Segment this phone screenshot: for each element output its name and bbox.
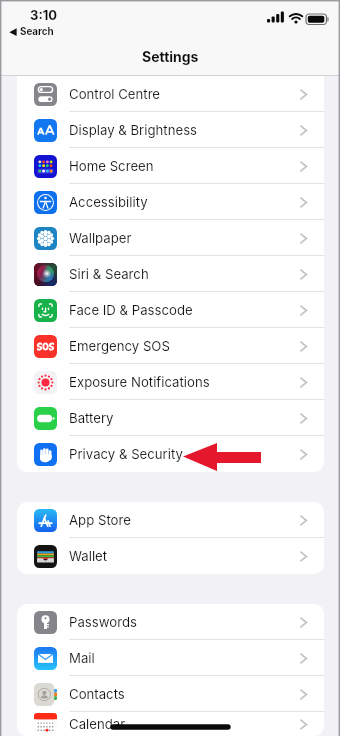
button[interactable]: Wallpaper bbox=[17, 220, 324, 256]
button[interactable]: Search bbox=[9, 26, 54, 38]
staticText: Wallet bbox=[69, 548, 108, 564]
button[interactable]: Control Centre bbox=[17, 76, 324, 112]
staticText: Control Centre bbox=[69, 86, 161, 102]
button[interactable]: Face ID & Passcode bbox=[17, 292, 324, 328]
button[interactable]: Exposure Notifications bbox=[17, 364, 324, 400]
button[interactable]: Wallet bbox=[17, 538, 324, 574]
staticText: Emergency SOS bbox=[69, 338, 170, 354]
staticText: Display & Brightness bbox=[69, 122, 198, 138]
button[interactable]: Battery bbox=[17, 400, 324, 436]
staticText: Battery bbox=[69, 410, 114, 426]
staticText: Passwords bbox=[69, 614, 137, 630]
staticText: Calendar bbox=[69, 716, 126, 732]
button[interactable]: Home Screen bbox=[17, 148, 324, 184]
staticText: 3:10 bbox=[30, 7, 58, 23]
button[interactable]: Emergency SOS bbox=[17, 328, 324, 364]
button[interactable]: Accessibility bbox=[17, 184, 324, 220]
button[interactable]: Mail bbox=[17, 640, 324, 676]
staticText: Mail bbox=[69, 650, 95, 666]
staticText: Settings bbox=[142, 48, 199, 65]
staticText: App Store bbox=[69, 512, 131, 528]
button[interactable]: Display & Brightness bbox=[17, 112, 324, 148]
button[interactable]: Siri & Search bbox=[17, 256, 324, 292]
staticText: Home Screen bbox=[69, 158, 154, 174]
staticText: Accessibility bbox=[69, 194, 148, 210]
staticText: Contacts bbox=[69, 686, 125, 702]
button[interactable]: Calendar bbox=[17, 712, 324, 736]
staticText: Privacy & Security bbox=[69, 446, 183, 462]
button[interactable]: Passwords bbox=[17, 604, 324, 640]
staticText: Search bbox=[20, 26, 54, 38]
button[interactable]: Privacy & Security bbox=[17, 436, 324, 472]
staticText: Face ID & Passcode bbox=[69, 302, 193, 318]
staticText: Siri & Search bbox=[69, 266, 149, 282]
button[interactable]: Contacts bbox=[17, 676, 324, 712]
staticText: Wallpaper bbox=[69, 230, 132, 246]
staticText: Exposure Notifications bbox=[69, 374, 210, 390]
button[interactable]: App Store bbox=[17, 502, 324, 538]
